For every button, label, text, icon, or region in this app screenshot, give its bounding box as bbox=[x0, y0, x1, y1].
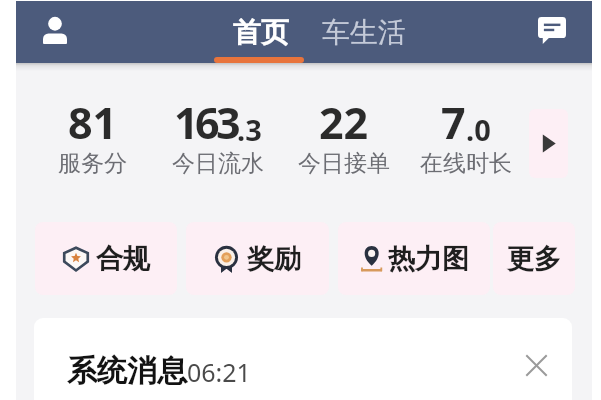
staticText: 奖励 bbox=[247, 242, 301, 276]
staticText: 合规 bbox=[96, 242, 150, 276]
staticText: 81 bbox=[68, 93, 118, 152]
staticText: 在线时长 bbox=[420, 149, 512, 178]
button[interactable]: 奖励 bbox=[186, 222, 329, 295]
staticText: 服务分 bbox=[58, 149, 127, 178]
button[interactable]: 合规 bbox=[35, 222, 177, 295]
staticText: 今日接单 bbox=[298, 149, 390, 178]
staticText: 热力图 bbox=[388, 242, 469, 276]
button[interactable]: 7 bbox=[402, 91, 530, 181]
staticText: 7 bbox=[441, 93, 466, 152]
button[interactable]: 81 bbox=[28, 91, 156, 181]
button[interactable]: 热力图 bbox=[338, 222, 490, 295]
staticText: 更多 bbox=[507, 242, 561, 276]
staticText: .0 bbox=[466, 110, 491, 149]
button[interactable]: Close bbox=[519, 348, 553, 382]
staticText: 163 bbox=[174, 93, 237, 152]
staticText: 系统消息 bbox=[67, 352, 187, 390]
button[interactable]: 22 bbox=[280, 91, 408, 181]
button[interactable]: 车生活 bbox=[314, 1, 398, 62]
button[interactable]: Profile bbox=[33, 8, 77, 52]
staticText: .3 bbox=[237, 110, 262, 149]
button[interactable]: More statistics bbox=[529, 109, 568, 178]
staticText: 首页 bbox=[233, 15, 289, 50]
staticText: 今日流水 bbox=[172, 149, 264, 178]
staticText: 车生活 bbox=[322, 15, 406, 50]
staticText: 22 bbox=[319, 93, 369, 152]
button[interactable]: 更多 bbox=[493, 222, 575, 295]
button[interactable]: 首页 bbox=[204, 1, 318, 62]
button[interactable]: 系统消息 bbox=[34, 318, 572, 400]
staticText: 06:21 bbox=[187, 355, 251, 389]
button[interactable]: Messages bbox=[530, 8, 574, 52]
button[interactable]: 163 bbox=[154, 91, 282, 181]
